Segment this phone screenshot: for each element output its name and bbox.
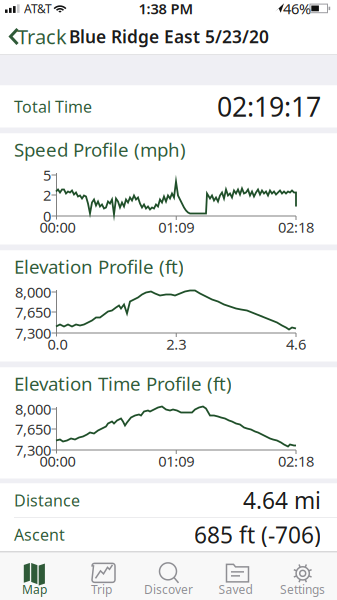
staticText: 01:09 [158,451,194,471]
staticText: Total Time [14,96,92,117]
staticText: 02:19:17 [217,89,321,124]
staticText: 4.6 [286,334,306,354]
button[interactable]: Settings [269,552,336,600]
staticText: Blue Ridge East 5/23/20 [69,25,269,48]
staticText: 4.64 mi [243,485,321,515]
button[interactable]: Track [0,17,70,54]
staticText: Saved [218,581,252,597]
staticText: Ascent [14,524,65,545]
staticText: Settings [280,581,325,597]
staticText: 7,300 [15,323,51,343]
staticText: Elevation Profile (ft) [14,254,184,279]
staticText: 02:18 [278,451,314,471]
staticText: Track [17,23,67,50]
staticText: Trip [91,581,112,597]
staticText: 7,650 [15,419,51,439]
staticText: 00:00 [39,217,75,237]
staticText: 01:09 [158,217,194,237]
staticText: 0.0 [47,334,67,354]
staticText: Distance [14,490,80,511]
staticText: 2.3 [166,334,186,354]
staticText: 1:38 PM [138,0,193,18]
button[interactable]: Discover [135,552,202,600]
button[interactable]: Map [1,552,68,600]
button[interactable]: Trip [68,552,135,600]
staticText: 5 [43,165,51,185]
staticText: 46% [283,0,311,18]
staticText: 8,000 [15,399,51,419]
staticText: 0 [43,206,51,226]
staticText: 8,000 [15,282,51,302]
staticText: 00:00 [39,451,75,471]
staticText: 2 [43,185,51,205]
staticText: Speed Profile (mph) [14,137,186,162]
button[interactable]: Saved [202,552,269,600]
staticText: 02:18 [278,217,314,237]
staticText: AT&T [24,0,52,16]
staticText: Elevation Time Profile (ft) [14,371,232,396]
staticText: 7,650 [15,302,51,322]
staticText: 685 ft (-706) [194,519,321,550]
staticText: 7,300 [15,440,51,460]
staticText: Discover [144,581,193,597]
staticText: Map [22,581,47,597]
